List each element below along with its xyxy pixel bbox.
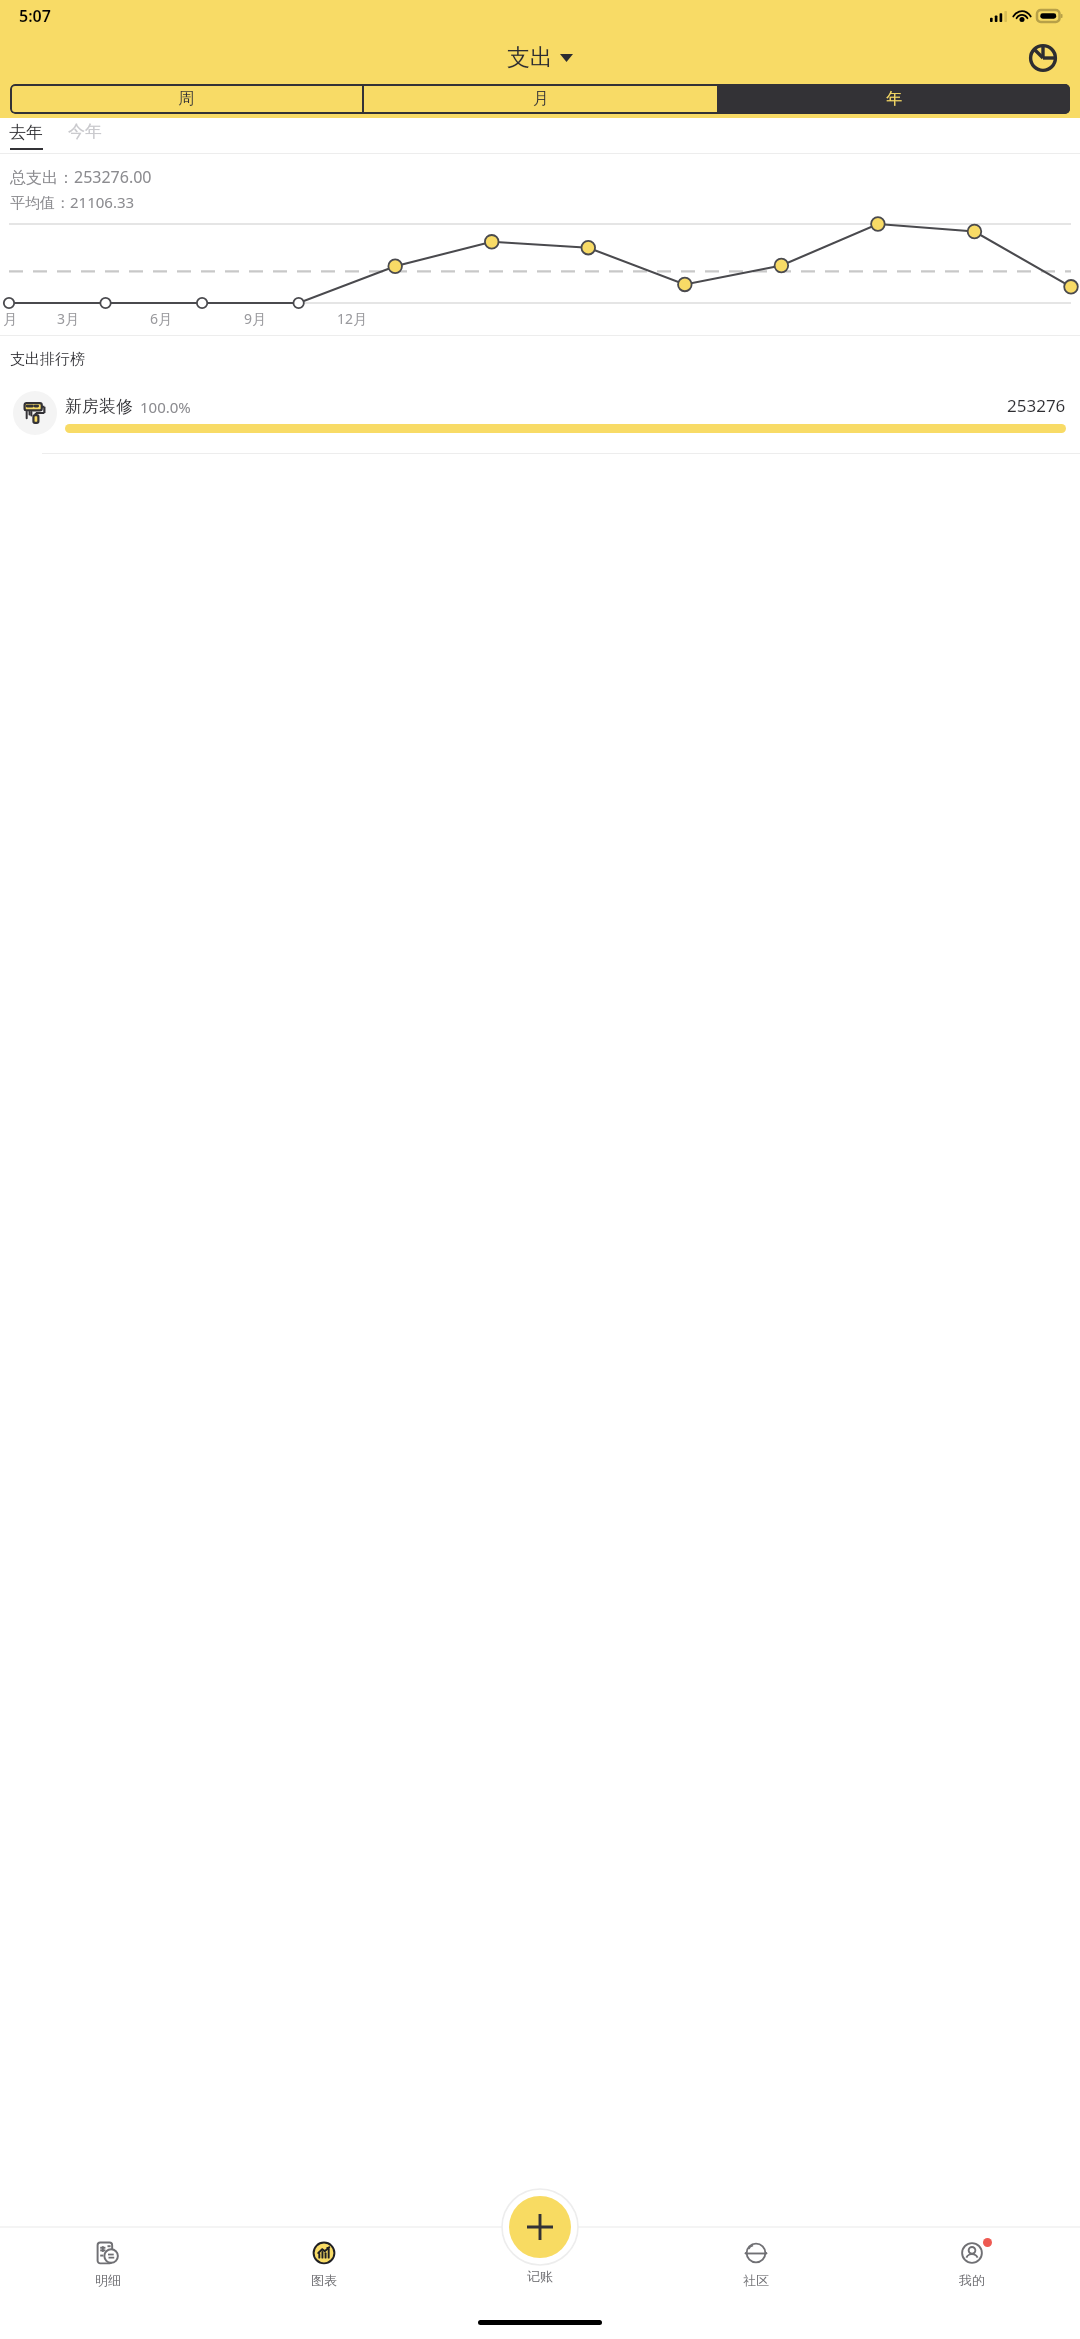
button[interactable]: 新房装修: [0, 385, 1080, 441]
button[interactable]: 我的: [864, 2205, 1080, 2309]
staticText: 5:07: [19, 5, 51, 27]
staticText: 253276: [1007, 394, 1066, 417]
staticText: 周: [178, 89, 194, 109]
button[interactable]: 图表: [216, 2205, 432, 2309]
staticText: 社区: [743, 2272, 769, 2288]
button[interactable]: 月: [364, 84, 717, 114]
button[interactable]: Pie chart: [1020, 35, 1066, 81]
staticText: 月: [533, 89, 549, 109]
staticText: 图表: [311, 2272, 337, 2288]
staticText: 100.0%: [140, 397, 191, 417]
button[interactable]: 支出: [507, 43, 573, 72]
staticText: 1月: [0, 309, 18, 328]
staticText: 6月: [150, 309, 173, 328]
staticText: 新房装修: [65, 396, 133, 417]
staticText: 12月: [337, 309, 368, 328]
staticText: 平均值：21106.33: [10, 192, 135, 212]
staticText: 年: [886, 89, 902, 109]
staticText: 记账: [527, 2268, 553, 2284]
staticText: 3月: [57, 309, 80, 328]
button[interactable]: 明细: [0, 2205, 216, 2309]
button[interactable]: 今年: [68, 121, 102, 142]
button[interactable]: 周: [10, 84, 362, 114]
button[interactable]: 去年: [9, 122, 43, 150]
staticText: 我的: [959, 2272, 985, 2288]
button[interactable]: 年: [717, 84, 1070, 114]
staticText: 今年: [68, 121, 102, 142]
staticText: 9月: [244, 309, 267, 328]
staticText: 支出排行榜: [10, 350, 85, 369]
staticText: 支出: [507, 43, 553, 72]
staticText: 明细: [95, 2272, 121, 2288]
staticText: 总支出：253276.00: [10, 166, 152, 188]
staticText: 去年: [9, 122, 43, 143]
button[interactable]: 记账: [509, 2196, 571, 2258]
button[interactable]: 社区: [648, 2205, 864, 2309]
